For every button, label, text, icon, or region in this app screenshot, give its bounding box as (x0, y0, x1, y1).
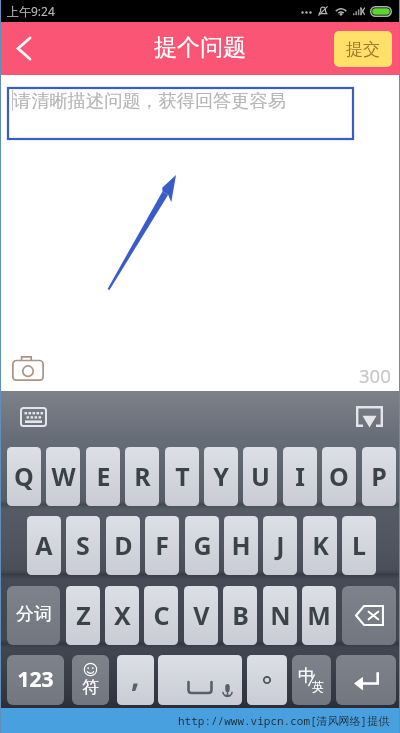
staticText: G (193, 528, 212, 562)
button[interactable]: Keyboard layout (20, 407, 47, 427)
staticText: O (329, 459, 349, 493)
button[interactable]: Add photo (12, 356, 44, 381)
staticText: N (270, 598, 291, 632)
button[interactable]: J (263, 516, 297, 575)
button[interactable]: Enter (336, 655, 396, 705)
staticText: Y (213, 459, 229, 493)
button[interactable]: U (243, 447, 277, 506)
staticText: 123 (17, 665, 54, 694)
button[interactable]: Space (158, 655, 242, 705)
staticText: A (35, 528, 53, 562)
button[interactable]: Z (66, 586, 100, 645)
staticText: 上午9:24 (7, 3, 55, 19)
button[interactable]: I (283, 447, 317, 506)
staticText: 英 (312, 679, 324, 694)
staticText: , (131, 655, 140, 696)
staticText: J (276, 528, 285, 562)
staticText: C (153, 598, 170, 632)
staticText: 符 (82, 677, 99, 698)
button[interactable]: Comma (117, 655, 154, 705)
button[interactable]: O (322, 447, 356, 506)
staticText: Q (14, 459, 34, 493)
button[interactable]: L (342, 516, 376, 575)
button[interactable]: N (263, 586, 297, 645)
button[interactable]: 分词 (7, 586, 60, 645)
button[interactable]: P (362, 447, 396, 506)
other: Space (158, 655, 242, 705)
staticText: 300 (359, 363, 391, 388)
staticText: 提交 (346, 39, 380, 60)
staticText: 中 (298, 665, 315, 686)
button[interactable]: 提交 (334, 31, 392, 67)
button[interactable]: Q (7, 447, 41, 506)
other: Enter (336, 655, 396, 705)
other: Backspace (342, 586, 396, 645)
staticText: B (232, 598, 249, 632)
staticText: M (307, 598, 331, 632)
button[interactable]: D (106, 516, 140, 575)
button[interactable]: Period (247, 655, 287, 705)
staticText: U (251, 459, 270, 493)
button[interactable]: Back (0, 22, 48, 75)
staticText: H (231, 528, 251, 562)
staticText: 请清晰描述问题，获得回答更容易 (13, 89, 286, 112)
button[interactable]: B (223, 586, 257, 645)
staticText: Z (76, 598, 91, 632)
button[interactable]: F (145, 516, 179, 575)
staticText: D (114, 528, 133, 562)
staticText: K (312, 528, 329, 562)
staticText: S (76, 528, 90, 562)
button[interactable]: X (105, 586, 139, 645)
staticText: 提个问题 (154, 33, 246, 62)
staticText: L (352, 528, 366, 562)
button[interactable]: V (184, 586, 218, 645)
staticText: F (155, 528, 169, 562)
button[interactable]: Backspace (342, 586, 396, 645)
staticText: X (114, 598, 131, 632)
staticText: P (371, 459, 387, 493)
button[interactable]: S (66, 516, 100, 575)
button[interactable]: T (165, 447, 199, 506)
button[interactable]: E (86, 447, 120, 506)
button[interactable]: 符 (72, 655, 109, 705)
staticText: T (175, 459, 190, 493)
staticText: 分词 (16, 603, 52, 626)
button[interactable]: M (302, 586, 336, 645)
button[interactable]: H (224, 516, 258, 575)
staticText: I (295, 459, 305, 493)
button[interactable]: 123 (7, 655, 64, 705)
staticText: W (51, 459, 76, 493)
button[interactable]: Hide keyboard (356, 406, 383, 427)
other: Period (247, 655, 287, 705)
button[interactable]: C (144, 586, 178, 645)
button[interactable]: K (303, 516, 337, 575)
button[interactable]: G (185, 516, 219, 575)
other: Comma (117, 655, 154, 705)
button[interactable]: R (125, 447, 159, 506)
staticText: E (96, 459, 111, 493)
staticText: V (193, 598, 210, 632)
staticText: R (134, 459, 151, 493)
button[interactable]: Y (204, 447, 238, 506)
button[interactable]: 中 (292, 655, 331, 705)
staticText: http://www.vipcn.com[清风网络]提供 (178, 713, 390, 728)
button[interactable]: W (46, 447, 80, 506)
button[interactable]: A (27, 516, 61, 575)
